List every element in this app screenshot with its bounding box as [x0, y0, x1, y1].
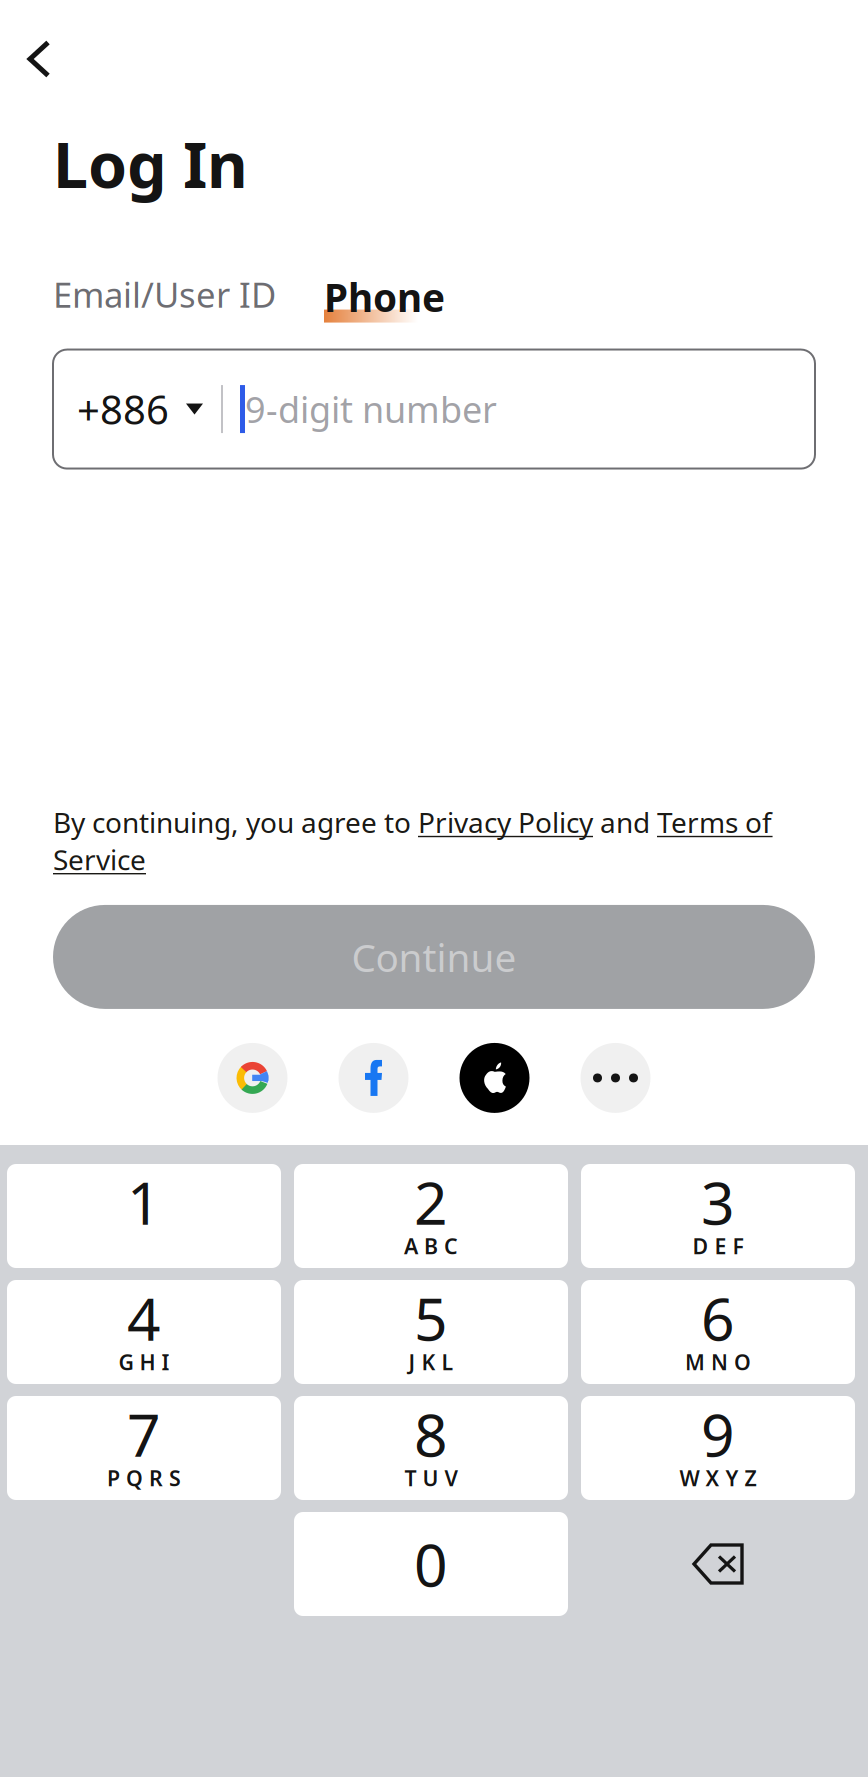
staticText: By continuing, you agree to Privacy Poli…	[53, 804, 772, 878]
button[interactable]: More options	[580, 1043, 650, 1113]
button[interactable]: 8	[294, 1396, 568, 1500]
button[interactable]: 6	[581, 1280, 855, 1384]
staticText: +886	[77, 382, 169, 436]
button[interactable]: Back	[0, 0, 77, 102]
staticText: 0	[414, 1525, 448, 1603]
button[interactable]: 2	[294, 1164, 568, 1268]
button[interactable]: 4	[7, 1280, 281, 1384]
button[interactable]: 1	[7, 1164, 281, 1268]
button[interactable]: Sign in with Google	[217, 1043, 287, 1113]
staticText: 9	[701, 1395, 735, 1473]
staticText: 4	[127, 1279, 161, 1357]
button[interactable]: 7	[7, 1396, 281, 1500]
button[interactable]: Continue	[53, 905, 815, 1009]
staticText: G H I	[118, 1348, 169, 1376]
staticText: 6	[701, 1279, 735, 1357]
staticText: D E F	[692, 1232, 743, 1260]
button[interactable]: 0	[294, 1512, 568, 1616]
staticText: W X Y Z	[679, 1464, 756, 1492]
staticText: Log In	[53, 122, 248, 205]
staticText: 9-digit number	[245, 385, 497, 433]
staticText: 2	[414, 1163, 448, 1241]
staticText: 5	[414, 1279, 448, 1357]
staticText: P Q R S	[107, 1464, 181, 1492]
staticText: Continue	[351, 931, 516, 983]
staticText: J K L	[408, 1348, 453, 1376]
staticText: 8	[414, 1395, 448, 1473]
staticText: 7	[127, 1395, 161, 1473]
button[interactable]: Sign in with Facebook	[338, 1043, 408, 1113]
staticText: M N O	[685, 1348, 751, 1376]
button[interactable]: Sign in with Apple	[459, 1043, 529, 1113]
button[interactable]: 5	[294, 1280, 568, 1384]
staticText: 1	[127, 1163, 161, 1241]
staticText: Email/User ID	[53, 271, 276, 317]
staticText: A B C	[404, 1232, 458, 1260]
staticText: T U V	[404, 1464, 457, 1492]
button[interactable]: Delete	[581, 1512, 855, 1616]
button[interactable]: 9	[581, 1396, 855, 1500]
staticText: Phone	[324, 271, 445, 322]
button[interactable]: 3	[581, 1164, 855, 1268]
staticText: 3	[701, 1163, 735, 1241]
button[interactable]: Email/User ID	[53, 253, 276, 321]
button[interactable]: Phone	[324, 253, 445, 324]
